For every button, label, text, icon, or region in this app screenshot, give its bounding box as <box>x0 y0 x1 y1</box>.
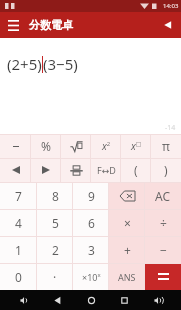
button[interactable]: 6 <box>73 209 109 236</box>
button[interactable]: Volume up <box>148 290 168 310</box>
button[interactable]: x squared <box>91 134 121 158</box>
staticText: ( <box>134 162 138 178</box>
button[interactable]: 2 <box>37 236 73 263</box>
staticText: 9 <box>88 188 95 204</box>
button[interactable]: 9 <box>73 182 109 209</box>
staticText: 6 <box>88 215 95 231</box>
staticText: 0 <box>15 269 22 285</box>
staticText: 分数電卓 <box>29 18 73 32</box>
button[interactable]: AC <box>145 182 181 209</box>
staticText: -14 <box>165 123 176 133</box>
button[interactable]: square root <box>61 134 91 158</box>
staticText: 8 <box>52 188 59 204</box>
button[interactable]: ( <box>121 158 151 182</box>
staticText: ×10x <box>82 271 101 283</box>
staticText: ) <box>164 162 168 178</box>
staticText: 2 <box>52 242 59 258</box>
button[interactable]: times ten to the x <box>73 263 109 290</box>
staticText: AC <box>155 188 171 204</box>
button[interactable]: Home <box>81 290 101 310</box>
staticText: π <box>162 138 170 154</box>
staticText: · <box>53 269 57 285</box>
button[interactable]: F↔D <box>91 158 121 182</box>
button[interactable]: + <box>109 236 145 263</box>
button[interactable]: 3 <box>73 236 109 263</box>
staticText: 3 <box>88 242 95 258</box>
button[interactable]: Menu <box>0 12 26 38</box>
button[interactable]: left <box>0 158 31 182</box>
staticText: x2 <box>102 139 111 153</box>
staticText: x□ <box>131 139 142 153</box>
button[interactable]: ) <box>151 158 181 182</box>
button[interactable]: Back <box>155 12 181 38</box>
staticText: (2+5) <box>7 54 42 74</box>
staticText: 7 <box>15 188 22 204</box>
button[interactable]: × <box>109 209 145 236</box>
button[interactable]: Back <box>47 290 67 310</box>
button[interactable]: 7 <box>0 182 37 209</box>
button[interactable]: 1 <box>0 236 37 263</box>
button[interactable]: x power <box>121 134 151 158</box>
button[interactable]: 8 <box>37 182 73 209</box>
button[interactable]: − <box>145 236 181 263</box>
staticText: (3−5) <box>43 54 78 74</box>
button[interactable]: Recents <box>114 290 134 310</box>
button[interactable]: ANS <box>109 263 145 290</box>
button[interactable]: 5 <box>37 209 73 236</box>
staticText: 14:03 <box>163 2 179 10</box>
button[interactable]: backspace <box>109 182 145 209</box>
staticText: − <box>160 242 167 258</box>
button[interactable]: π <box>151 134 181 158</box>
staticText: 1 <box>15 242 22 258</box>
button[interactable]: minus <box>0 134 31 158</box>
button[interactable]: fraction <box>61 158 91 182</box>
staticText: + <box>124 242 131 258</box>
button[interactable]: ÷ <box>145 209 181 236</box>
staticText: ANS <box>118 271 136 283</box>
staticText: % <box>41 138 51 154</box>
button[interactable]: Volume down <box>14 290 34 310</box>
staticText: 4 <box>15 215 22 231</box>
button[interactable]: 4 <box>0 209 37 236</box>
staticText: × <box>124 215 131 231</box>
button[interactable]: equals <box>145 263 181 290</box>
button[interactable]: 0 <box>0 263 37 290</box>
button[interactable]: % <box>31 134 61 158</box>
staticText: 5 <box>52 215 59 231</box>
staticText: ÷ <box>160 215 167 231</box>
button[interactable]: right <box>31 158 61 182</box>
button[interactable]: · <box>37 263 73 290</box>
staticText: F↔D <box>97 164 116 176</box>
